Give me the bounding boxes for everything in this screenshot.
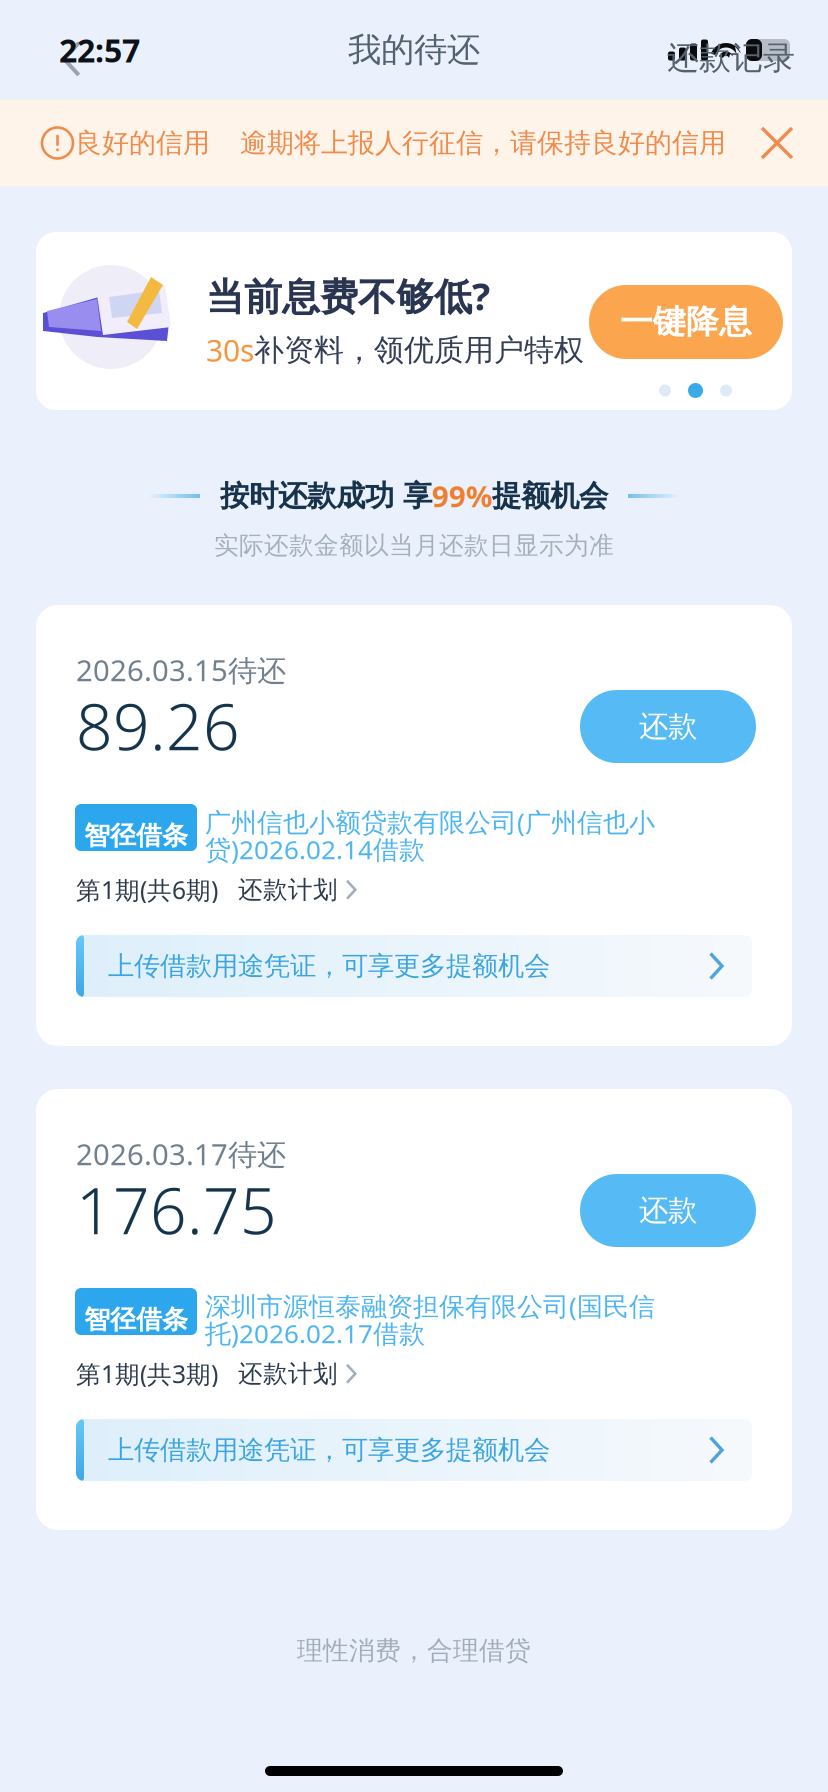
staticText: 贷)2026.02.14借款 xyxy=(205,831,425,867)
button[interactable]: 上传借款用途凭证，可享更多提额机会 xyxy=(76,1419,752,1481)
staticText: 一键降息 xyxy=(620,301,752,342)
staticText: 托)2026.02.17借款 xyxy=(205,1315,425,1351)
staticText: 第1期(共6期) xyxy=(76,873,218,906)
staticText: 良好的信用 xyxy=(75,126,210,160)
staticText: 还款 xyxy=(639,1192,697,1229)
button[interactable]: 还款 xyxy=(580,690,756,763)
staticText: 上传借款用途凭证，可享更多提额机会 xyxy=(108,949,550,983)
staticText: 22:57 xyxy=(59,28,140,72)
staticText: 提额机会 xyxy=(492,477,608,514)
button[interactable]: 返回 xyxy=(0,25,105,75)
staticText: 上传借款用途凭证，可享更多提额机会 xyxy=(108,1433,550,1467)
staticText: 按时还款成功 享 xyxy=(220,477,432,514)
staticText: 2026.03.17待还 xyxy=(76,1134,286,1174)
staticText: 补资料，领优质用户特权 xyxy=(254,331,584,369)
staticText: 智径借条 xyxy=(84,819,188,852)
staticText: 理性消费，合理借贷 xyxy=(297,1635,531,1667)
staticText: 还款计划 xyxy=(238,874,338,905)
staticText: 176.75 xyxy=(76,1166,277,1253)
staticText: 30s xyxy=(206,330,254,371)
staticText: 深圳市源恒泰融资担保有限公司(国民信 xyxy=(205,1288,655,1323)
staticText: 还款 xyxy=(639,708,697,745)
staticText: 逾 xyxy=(756,126,783,160)
button[interactable]: 第1期(共3期) xyxy=(36,1089,792,1390)
staticText: 广州信也小额贷款有限公司(广州信也小 xyxy=(205,804,655,839)
staticText: 逾期将上报人行征信，请保持良好的信用 xyxy=(240,126,726,160)
button[interactable]: 还款记录 xyxy=(653,16,828,84)
button[interactable]: 关闭 xyxy=(744,110,828,176)
staticText: 我的待还 xyxy=(348,29,480,71)
button[interactable]: 上传借款用途凭证，可享更多提额机会 xyxy=(76,935,752,997)
button[interactable]: 当前息费不够低? xyxy=(36,232,792,410)
staticText: 还款记录 xyxy=(667,38,795,78)
staticText: 89.26 xyxy=(76,682,240,769)
staticText: 智径借条 xyxy=(84,1303,188,1336)
staticText: 2026.03.15待还 xyxy=(76,650,286,690)
staticText: 实际还款金额以当月还款日显示为准 xyxy=(214,530,614,561)
staticText: 99% xyxy=(432,476,492,516)
staticText: 还款计划 xyxy=(238,1358,338,1389)
staticText: 第1期(共3期) xyxy=(76,1357,218,1390)
button[interactable]: 第1期(共6期) xyxy=(36,605,792,906)
staticText: 当前息费不够低? xyxy=(206,270,490,322)
button[interactable]: 还款 xyxy=(580,1174,756,1247)
